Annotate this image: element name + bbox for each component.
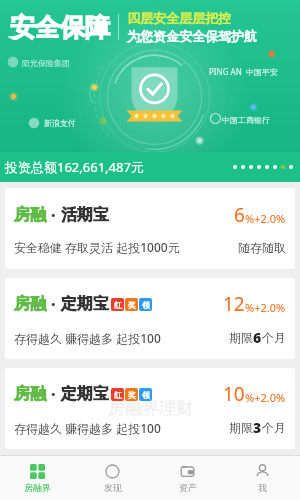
staticText: 红 <box>114 300 122 310</box>
staticText: 房融界 <box>24 482 51 493</box>
staticText: 随存随取 <box>238 240 286 255</box>
button[interactable]: 房融 <box>5 188 295 269</box>
button[interactable]: 资产 <box>150 456 225 500</box>
staticText: 6 <box>234 202 245 228</box>
staticText: 定期宝 <box>61 384 109 404</box>
button[interactable]: 房融界理财 <box>5 368 295 449</box>
staticText: · <box>51 204 56 226</box>
staticText: 领 <box>142 390 150 400</box>
staticText: 奖 <box>128 390 136 400</box>
staticText: 资产 <box>179 482 197 493</box>
staticText: 10 <box>223 381 245 407</box>
staticText: 期限 <box>229 420 253 435</box>
staticText: 奖 <box>128 300 136 310</box>
staticText: 期限 <box>229 330 253 345</box>
staticText: · <box>51 293 56 315</box>
button[interactable]: 房融 <box>5 278 295 359</box>
staticText: 定期宝 <box>61 294 109 314</box>
staticText: %+2.0% <box>245 211 286 226</box>
staticText: 个月 <box>262 420 286 435</box>
staticText: 安全稳健 存取灵活 起投1000元 <box>14 239 180 255</box>
staticText: 发现 <box>104 482 122 493</box>
button[interactable]: 我 <box>225 456 300 500</box>
staticText: 红 <box>114 390 122 400</box>
staticText: 为您资金安全保驾护航 <box>127 28 257 44</box>
button[interactable]: 房融界 <box>0 456 75 500</box>
staticText: 个月 <box>262 330 286 345</box>
staticText: 房融 <box>14 294 46 314</box>
staticText: 中国工商银行 <box>222 115 270 125</box>
staticText: 投资总额162,661,487元 <box>5 158 144 176</box>
staticText: · <box>51 383 56 405</box>
staticText: 房融 <box>14 205 46 225</box>
staticText: 四层安全层层把控 <box>127 10 231 26</box>
staticText: 存得越久 赚得越多 起投100 <box>14 330 161 346</box>
staticText: 领 <box>142 300 150 310</box>
staticText: PING AN 中国平安 <box>209 66 278 77</box>
staticText: 3 <box>253 418 262 437</box>
staticText: 12 <box>223 291 245 317</box>
staticText: 房融 <box>14 384 46 404</box>
staticText: 安全保障 <box>10 12 110 43</box>
staticText: %+2.0% <box>245 300 286 315</box>
button[interactable]: 发现 <box>75 456 150 500</box>
staticText: 6 <box>253 328 262 347</box>
staticText: 活期宝 <box>61 205 109 225</box>
staticText: 新浪支付 <box>44 118 76 128</box>
staticText: 我 <box>258 482 267 493</box>
staticText: 房融界理财 <box>108 398 193 419</box>
staticText: 阳光保险集团 <box>22 58 70 68</box>
staticText: 存得越久 赚得越多 起投100 <box>14 420 161 436</box>
staticText: %+2.0% <box>245 390 286 405</box>
